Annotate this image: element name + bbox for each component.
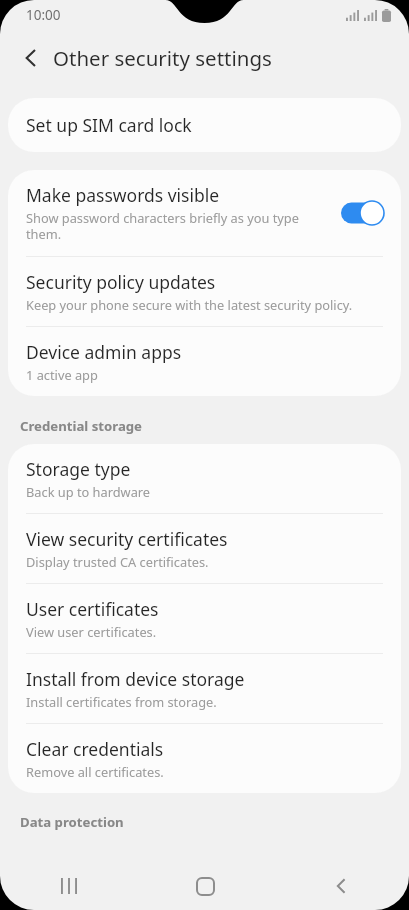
staticText: User certificates bbox=[26, 597, 159, 621]
button[interactable]: Back bbox=[11, 38, 51, 78]
staticText: Other security settings bbox=[53, 44, 272, 72]
button[interactable]: View security certificates bbox=[8, 514, 401, 583]
staticText: Back up to hardware bbox=[26, 483, 151, 500]
staticText: Security policy updates bbox=[26, 270, 216, 294]
staticText: View user certificates. bbox=[26, 623, 157, 640]
staticText: 10:00 bbox=[26, 6, 61, 24]
button[interactable]: Security policy updates bbox=[8, 257, 401, 326]
staticText: Set up SIM card lock bbox=[26, 113, 192, 137]
staticText: Clear credentials bbox=[26, 737, 164, 761]
button[interactable]: User certificates bbox=[8, 584, 401, 653]
staticText: Keep your phone secure with the latest s… bbox=[26, 296, 353, 313]
button[interactable]: Storage type bbox=[8, 444, 401, 513]
staticText: Data protection bbox=[20, 813, 124, 831]
staticText: Show password characters briefly as you … bbox=[26, 209, 331, 243]
staticText: Make passwords visible bbox=[26, 183, 220, 207]
staticText: Credential storage bbox=[20, 417, 142, 435]
button[interactable]: Device admin apps bbox=[8, 327, 401, 396]
button[interactable]: Clear credentials bbox=[8, 724, 401, 793]
staticText: Install certificates from storage. bbox=[26, 693, 217, 710]
button[interactable]: Set up SIM card lock bbox=[8, 98, 401, 152]
staticText: Device admin apps bbox=[26, 340, 182, 364]
button[interactable]: Home bbox=[137, 862, 273, 910]
staticText: 1 active app bbox=[26, 366, 98, 383]
button[interactable]: Back bbox=[273, 862, 409, 910]
staticText: Display trusted CA certificates. bbox=[26, 553, 209, 570]
button[interactable]: Make passwords visible bbox=[8, 170, 401, 256]
button[interactable]: Make passwords visible bbox=[341, 200, 385, 226]
button[interactable]: Install from device storage bbox=[8, 654, 401, 723]
staticText: Storage type bbox=[26, 457, 131, 481]
staticText: Remove all certificates. bbox=[26, 763, 164, 780]
button[interactable]: Recent apps bbox=[0, 862, 137, 910]
staticText: View security certificates bbox=[26, 527, 228, 551]
staticText: Install from device storage bbox=[26, 667, 245, 691]
